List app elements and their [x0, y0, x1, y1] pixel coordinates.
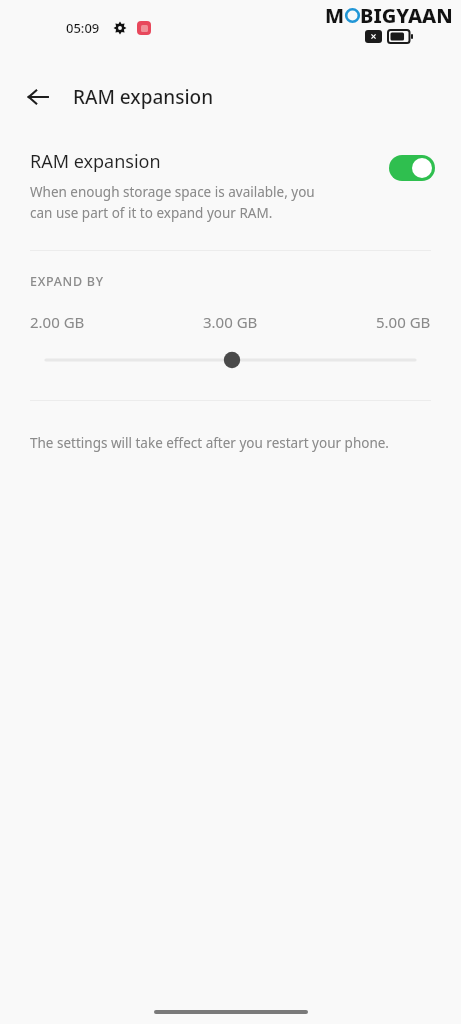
staticText: 5.00 GB — [376, 312, 431, 332]
staticText: RAM expansion — [73, 84, 214, 110]
staticText: M — [325, 2, 345, 29]
staticText: 3.00 GB — [203, 312, 258, 332]
staticText: When enough storage space is available, … — [30, 183, 315, 222]
button[interactable]: RAM expansion — [0, 149, 461, 222]
staticText: BIGYAAN — [360, 2, 453, 29]
staticText: 05:09 — [66, 19, 100, 37]
button[interactable]: RAM expansion toggle, on — [389, 155, 435, 181]
button[interactable]: Back — [18, 77, 58, 117]
staticText: 2.00 GB — [30, 312, 85, 332]
staticText: RAM expansion — [30, 149, 161, 174]
staticText: EXPAND BY — [30, 273, 104, 290]
button[interactable]: Expand by slider, 3.00 GB — [0, 348, 461, 372]
staticText: The settings will take effect after you … — [30, 434, 389, 452]
